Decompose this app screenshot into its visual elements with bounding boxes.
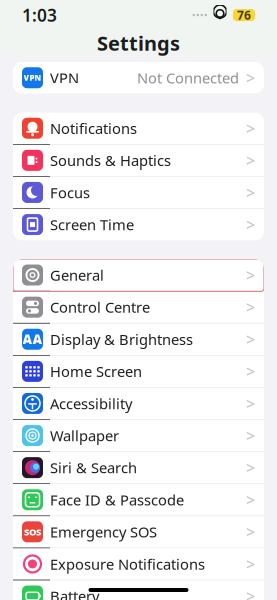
staticText: > bbox=[246, 67, 255, 88]
button[interactable]: Face ID & Passcode bbox=[13, 484, 264, 516]
button[interactable]: Notifications bbox=[13, 112, 264, 145]
staticText: > bbox=[246, 214, 255, 235]
staticText: Accessibility bbox=[50, 394, 132, 413]
staticText: > bbox=[246, 264, 255, 286]
staticText: Display & Brightness bbox=[50, 329, 193, 349]
button[interactable]: SOS bbox=[13, 516, 264, 548]
button[interactable]: Exposure Notifications bbox=[13, 548, 264, 580]
staticText: Home Screen bbox=[50, 362, 142, 381]
staticText: > bbox=[246, 361, 255, 382]
button[interactable]: Focus bbox=[13, 177, 264, 209]
staticText: Focus bbox=[50, 183, 90, 202]
staticText: > bbox=[246, 489, 255, 510]
staticText: Exposure Notifications bbox=[50, 554, 205, 574]
staticText: > bbox=[246, 585, 255, 600]
staticText: > bbox=[246, 329, 255, 350]
staticText: AA bbox=[22, 330, 42, 348]
staticText: VPN bbox=[50, 68, 79, 87]
staticText: > bbox=[246, 150, 255, 171]
staticText: Face ID & Passcode bbox=[50, 490, 184, 509]
button[interactable]: Accessibility bbox=[13, 388, 264, 420]
button[interactable]: Sounds & Haptics bbox=[13, 145, 264, 177]
staticText: > bbox=[246, 521, 255, 542]
staticText: > bbox=[246, 393, 255, 414]
button[interactable]: General bbox=[13, 259, 264, 291]
button[interactable]: Battery bbox=[13, 580, 264, 600]
staticText: > bbox=[246, 296, 255, 318]
staticText: > bbox=[246, 553, 255, 574]
button[interactable]: Control Centre bbox=[13, 291, 264, 323]
staticText: Emergency SOS bbox=[50, 522, 157, 542]
staticText: > bbox=[246, 182, 255, 203]
staticText: 1:03 bbox=[22, 3, 57, 26]
staticText: 76 bbox=[237, 7, 251, 23]
staticText: Settings bbox=[97, 30, 180, 56]
staticText: Control Centre bbox=[50, 297, 150, 317]
button[interactable]: AA bbox=[13, 323, 264, 356]
staticText: Not Connected bbox=[137, 68, 239, 87]
staticText: Siri & Search bbox=[50, 458, 137, 477]
staticText: > bbox=[246, 118, 255, 139]
button[interactable]: Wallpaper bbox=[13, 420, 264, 452]
staticText: Sounds & Haptics bbox=[50, 151, 171, 170]
staticText: VPN bbox=[23, 72, 41, 83]
staticText: Wallpaper bbox=[50, 426, 119, 445]
button[interactable]: Siri & Search bbox=[13, 452, 264, 484]
button[interactable]: Home Screen bbox=[13, 356, 264, 388]
staticText: Screen Time bbox=[50, 215, 134, 234]
staticText: Notifications bbox=[50, 118, 137, 138]
button[interactable]: VPN bbox=[13, 62, 264, 93]
staticText: General bbox=[50, 265, 104, 285]
staticText: SOS bbox=[24, 526, 41, 538]
staticText: Battery bbox=[50, 586, 99, 600]
staticText: > bbox=[246, 457, 255, 478]
button[interactable]: Screen Time bbox=[13, 209, 264, 240]
staticText: > bbox=[246, 425, 255, 446]
